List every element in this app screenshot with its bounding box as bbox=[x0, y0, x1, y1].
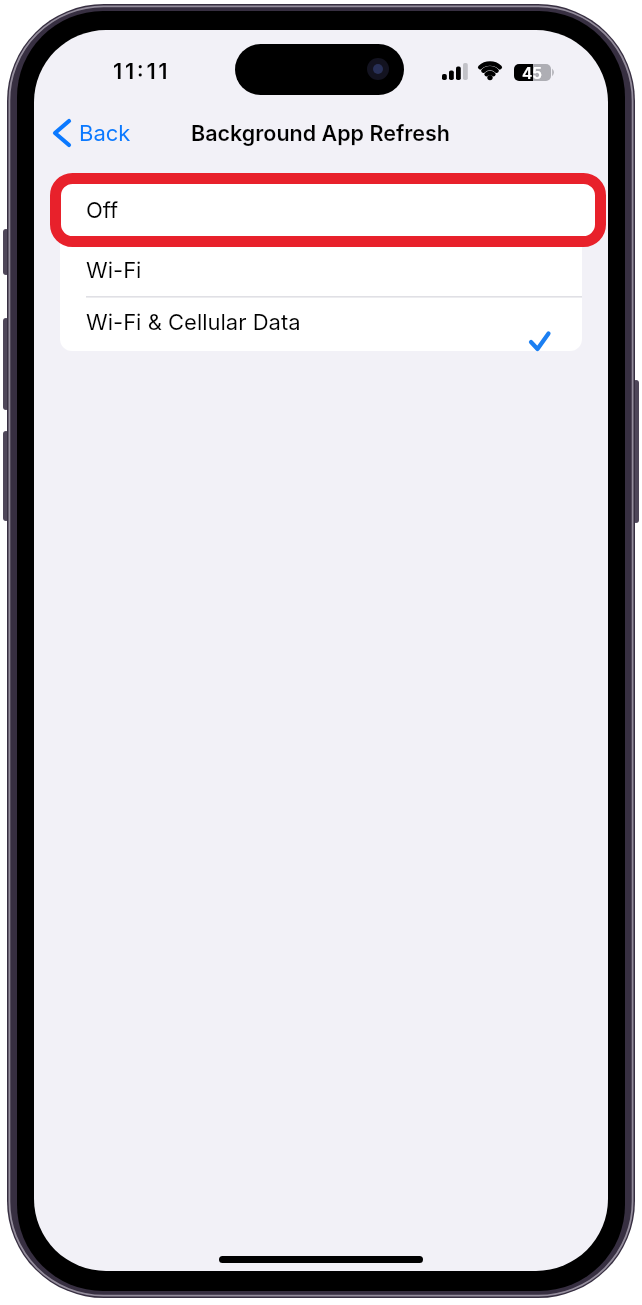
staticText: Wi-Fi & Cellular Data bbox=[86, 309, 301, 336]
button[interactable]: Wi-Fi bbox=[60, 245, 582, 295]
button[interactable]: Off bbox=[55, 178, 601, 242]
button[interactable]: Wi-Fi & Cellular Data bbox=[60, 297, 582, 347]
staticText: Off bbox=[86, 197, 119, 224]
staticText: Background App Refresh bbox=[191, 120, 451, 146]
staticText: Back bbox=[79, 120, 131, 147]
staticText: 11:11 bbox=[113, 58, 171, 85]
staticText: 45 bbox=[522, 64, 543, 81]
button[interactable]: Back bbox=[48, 116, 138, 150]
staticText: Wi-Fi bbox=[86, 257, 142, 284]
